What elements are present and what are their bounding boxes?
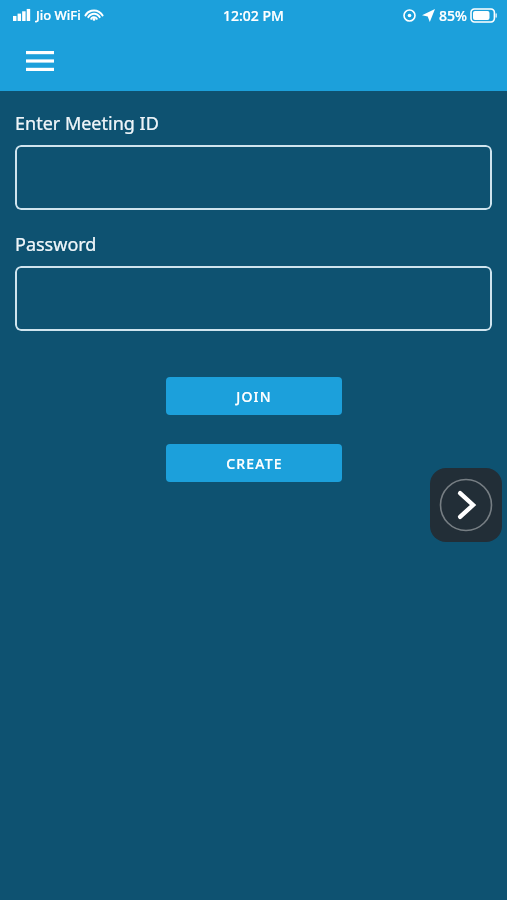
button[interactable]: Next [430,468,502,542]
button[interactable]: CREATE [166,444,342,482]
staticText: CREATE [226,454,283,473]
button[interactable] [15,266,492,331]
staticText: Jio WiFi [36,6,81,24]
button[interactable]: Menu [18,39,62,83]
staticText: 12:02 PM [223,6,284,25]
staticText: 85% [439,6,467,25]
staticText: Enter Meeting ID [15,111,159,136]
button[interactable]: JOIN [166,377,342,415]
staticText: JOIN [236,387,272,406]
button[interactable] [15,145,492,210]
staticText: Password [15,232,97,257]
